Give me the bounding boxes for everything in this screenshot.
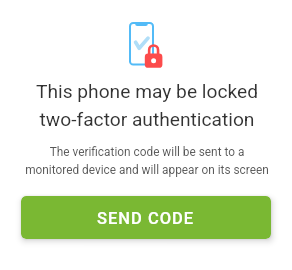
staticText: The verification code will be sent to a … [1, 145, 292, 177]
staticText: This phone may be locked two-factor auth… [1, 80, 292, 131]
button[interactable]: SEND CODE [21, 196, 271, 239]
other: Two factor authentication [129, 22, 164, 68]
staticText: SEND CODE [97, 209, 195, 228]
